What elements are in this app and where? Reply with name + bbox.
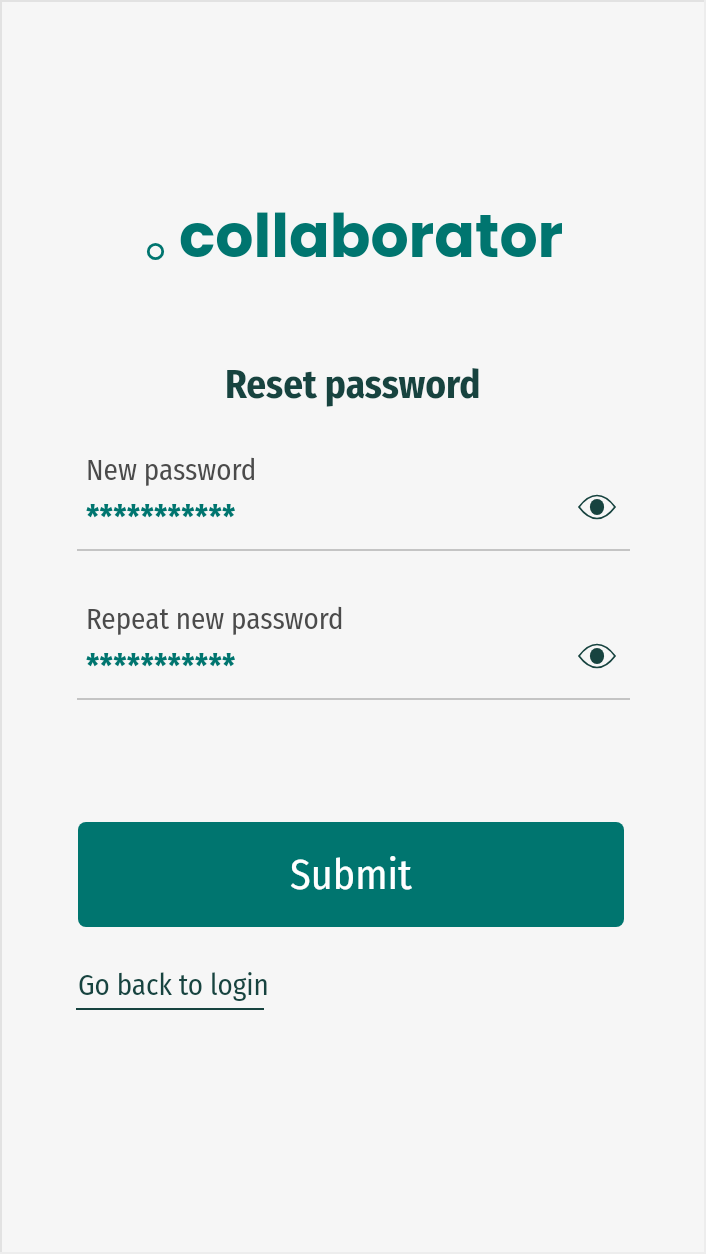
staticText: Submit	[290, 850, 412, 900]
staticText: ***********	[86, 498, 236, 536]
button[interactable]: Show password	[574, 633, 620, 679]
button[interactable]: New password	[77, 453, 630, 563]
staticText: New password	[86, 453, 257, 488]
button[interactable]: Go back to login	[76, 968, 269, 1010]
staticText: collaborator	[179, 194, 564, 278]
staticText: Repeat new password	[86, 602, 344, 637]
staticText: Go back to login	[78, 968, 269, 1003]
staticText: ***********	[86, 647, 236, 685]
button[interactable]: Submit	[78, 822, 624, 927]
staticText: Reset password	[225, 362, 481, 409]
button[interactable]: Show password	[574, 484, 620, 530]
button[interactable]: Repeat new password	[77, 602, 630, 712]
